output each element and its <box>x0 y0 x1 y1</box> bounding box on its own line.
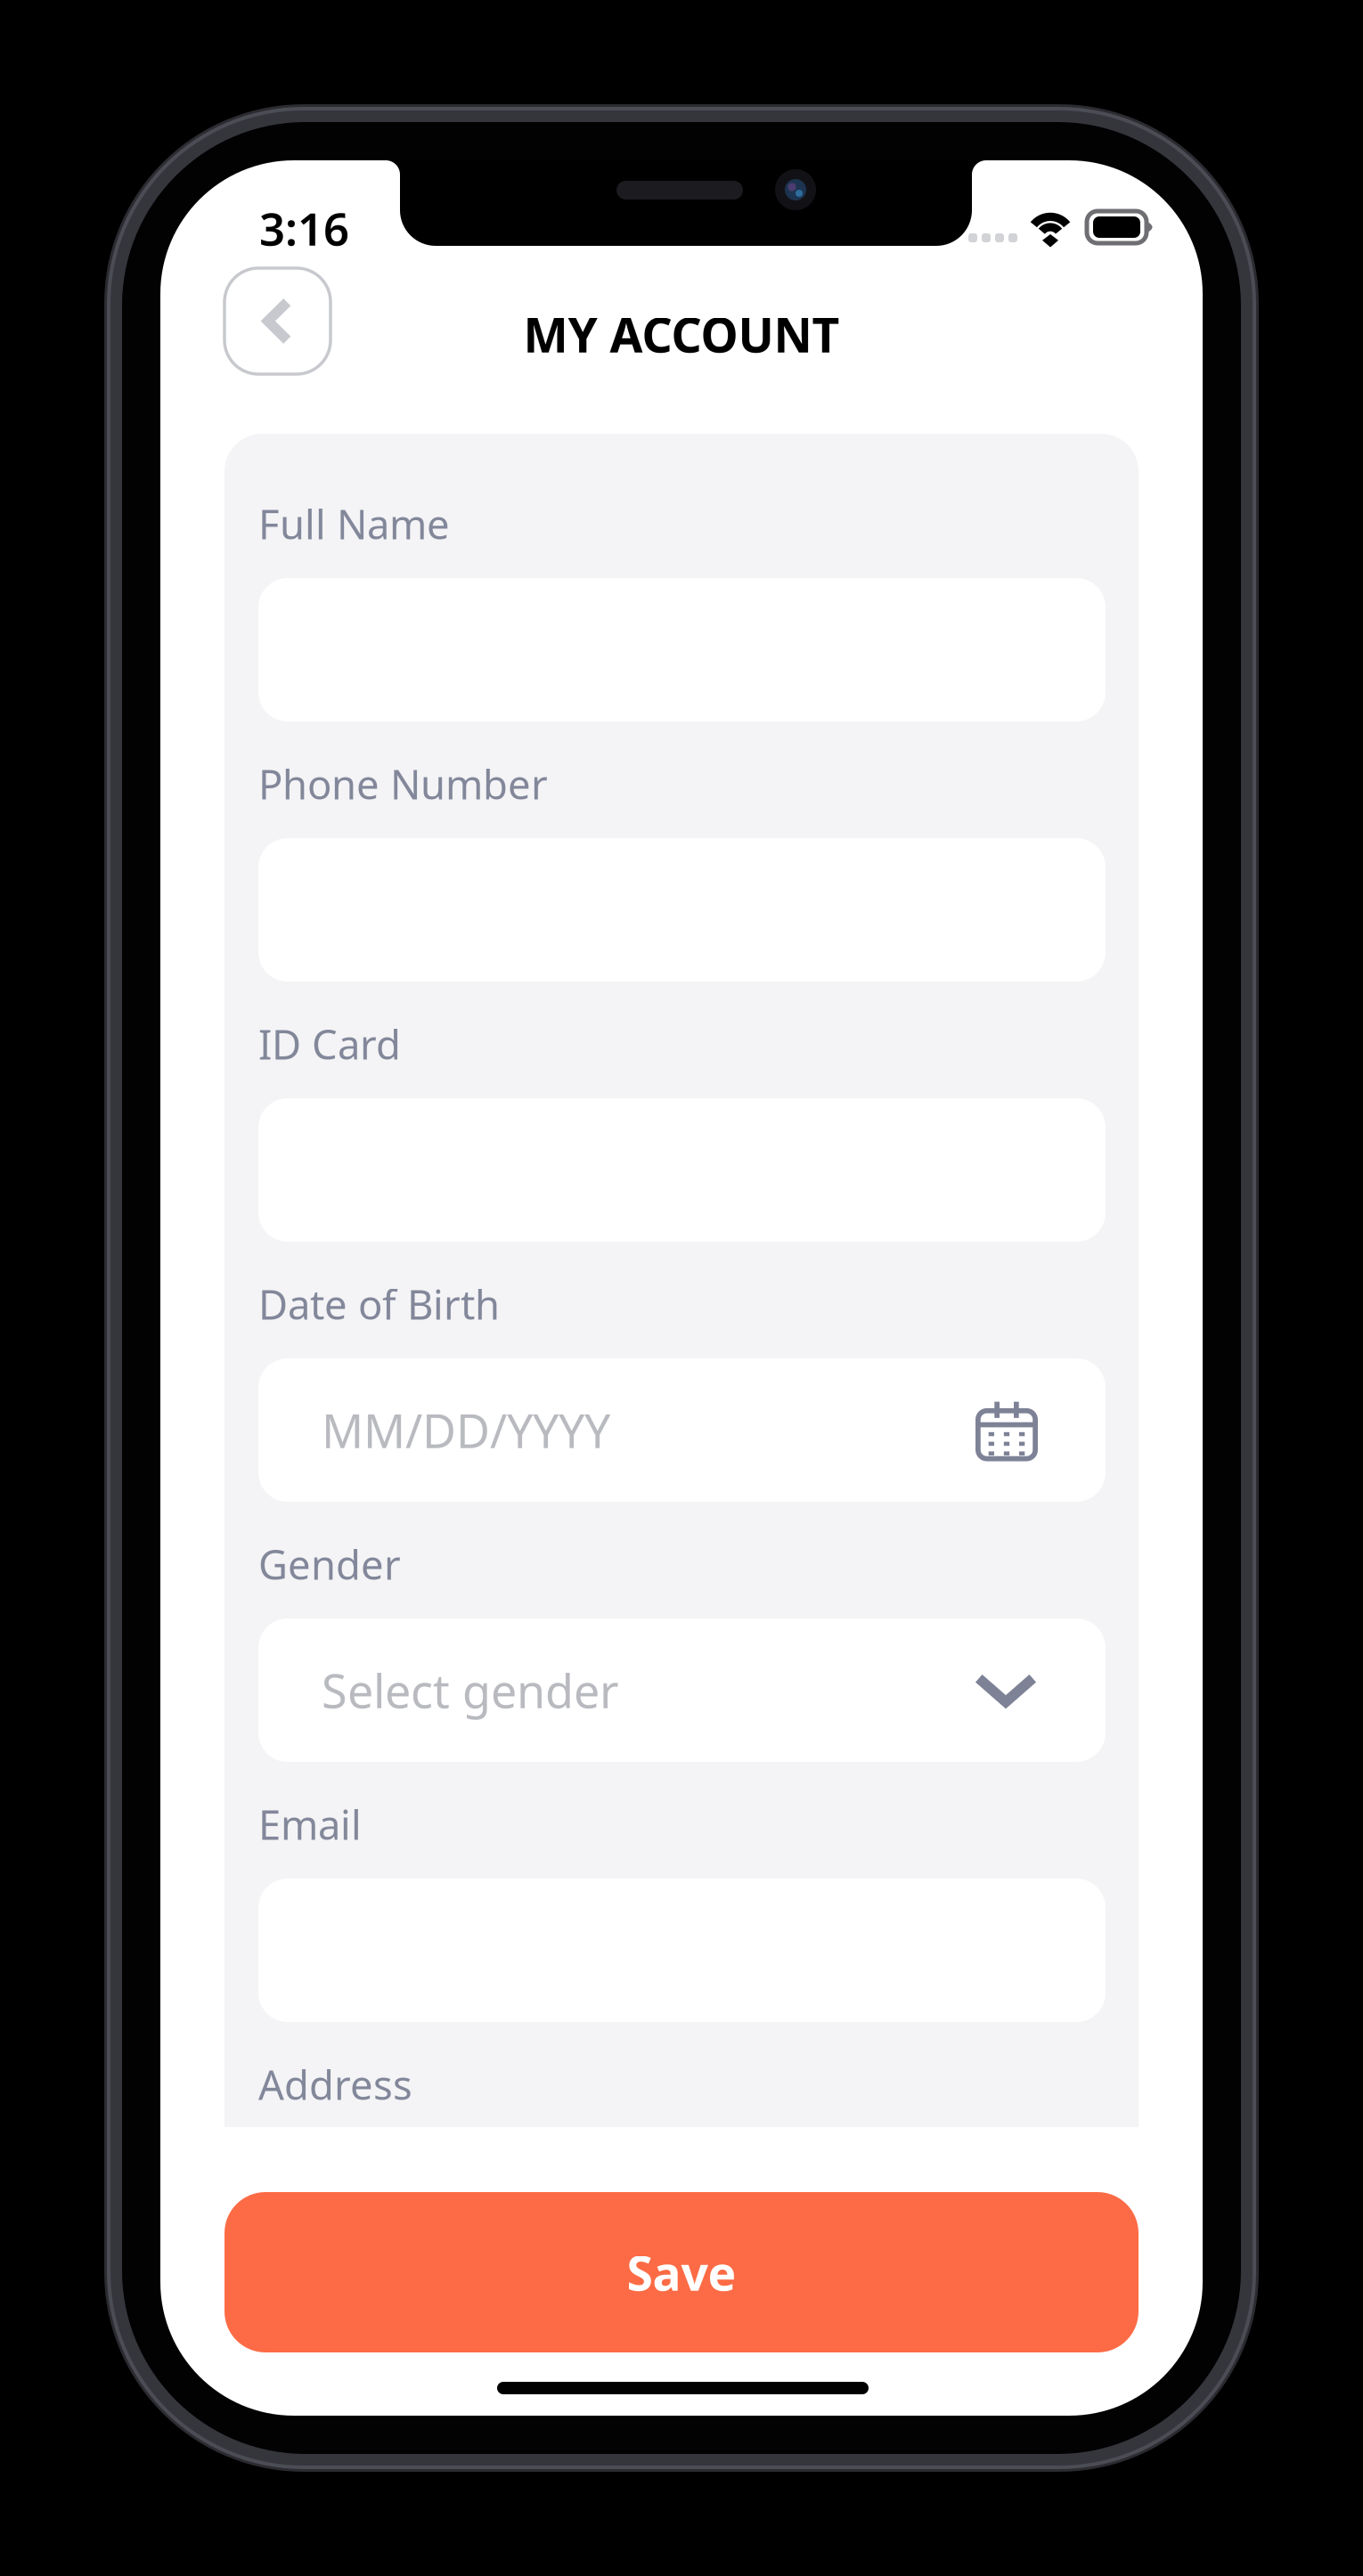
staticText: MY ACCOUNT <box>523 302 840 366</box>
staticText: ID Card <box>258 1017 401 1071</box>
staticText: 3:16 <box>259 198 349 258</box>
staticText: Address <box>258 2058 412 2111</box>
staticText: Select gender <box>322 1659 618 1721</box>
button[interactable]: Back <box>224 268 331 374</box>
staticText: Email <box>258 1797 362 1851</box>
staticText: Gender <box>258 1537 401 1591</box>
staticText: Full Name <box>258 497 450 551</box>
staticText: Save <box>627 2241 736 2304</box>
button[interactable]: Save <box>224 2192 1139 2352</box>
staticText: Phone Number <box>258 757 548 811</box>
staticText: Date of Birth <box>258 1277 500 1331</box>
staticText: MM/DD/YYYY <box>322 1399 610 1461</box>
